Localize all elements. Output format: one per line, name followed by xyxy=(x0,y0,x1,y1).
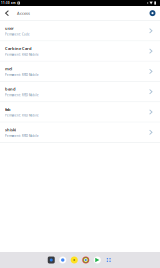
staticText: Permanent: Code xyxy=(5,33,30,36)
button[interactable]: Camera xyxy=(45,252,57,268)
staticText: fab xyxy=(5,107,11,112)
staticText: band xyxy=(5,86,16,92)
button[interactable]: All apps xyxy=(103,252,114,268)
staticText: mel xyxy=(5,66,12,71)
button[interactable]: Settings xyxy=(146,6,159,20)
button[interactable]: Messages xyxy=(57,252,68,268)
staticText: 11:30 am xyxy=(1,1,16,5)
button[interactable]: mel xyxy=(0,62,160,82)
staticText: Permanent: RFID Mobile xyxy=(5,53,39,56)
staticText: Access xyxy=(17,10,30,16)
button[interactable]: fab xyxy=(0,102,160,122)
button[interactable]: Chrome xyxy=(80,252,91,268)
staticText: shiski xyxy=(5,127,16,132)
staticText: Permanent: RFID Mobile xyxy=(5,93,39,97)
button[interactable]: Play Store xyxy=(91,252,103,268)
staticText: user xyxy=(5,25,14,31)
button[interactable]: Back xyxy=(0,6,14,20)
staticText: Permanent: RFID Mobile xyxy=(5,114,39,117)
staticText: Permanent: RFID Mobile xyxy=(5,73,39,77)
button[interactable]: band xyxy=(0,82,160,102)
staticText: Carbine Card xyxy=(5,46,32,51)
button[interactable]: shiski xyxy=(0,122,160,143)
staticText: Permanent: RFID Mobile xyxy=(5,134,39,138)
button[interactable]: Carbine Card xyxy=(0,41,160,62)
button[interactable]: Snapchat xyxy=(68,252,80,268)
button[interactable]: user xyxy=(0,21,160,41)
